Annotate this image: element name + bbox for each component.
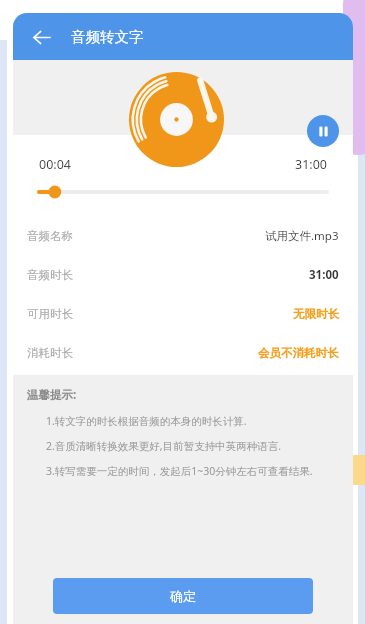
staticText: 确定 [170,588,196,604]
staticText: 温馨提示: [27,387,77,403]
button[interactable]: Pause [307,115,339,147]
button[interactable]: 音频时长 [13,255,353,294]
button[interactable]: Back [21,17,61,57]
button[interactable]: Audio record [129,72,224,167]
button[interactable]: 音频名称 [13,216,353,255]
staticText: 可用时长 [27,307,73,321]
button[interactable]: Seek [39,184,327,200]
staticText: 31:00 [295,156,327,173]
staticText: 会员不消耗时长 [258,346,339,360]
staticText: 2.音质清晰转换效果更好,目前暂支持中英两种语言. [46,439,281,453]
staticText: 试用文件.mp3 [265,228,339,244]
staticText: 00:04 [39,156,71,173]
button[interactable]: 消耗时长 [13,333,353,372]
staticText: 音频名称 [27,229,73,243]
staticText: 音频时长 [27,268,73,282]
staticText: 1.转文字的时长根据音频的本身的时长计算. [46,414,247,428]
button[interactable]: 可用时长 [13,294,353,333]
staticText: 音频转文字 [71,28,144,46]
button[interactable]: 确定 [53,578,313,614]
staticText: 31:00 [309,267,339,283]
staticText: 消耗时长 [27,346,73,360]
staticText: 无限时长 [293,307,339,321]
staticText: 3.转写需要一定的时间，发起后1~30分钟左右可查看结果. [46,464,313,478]
